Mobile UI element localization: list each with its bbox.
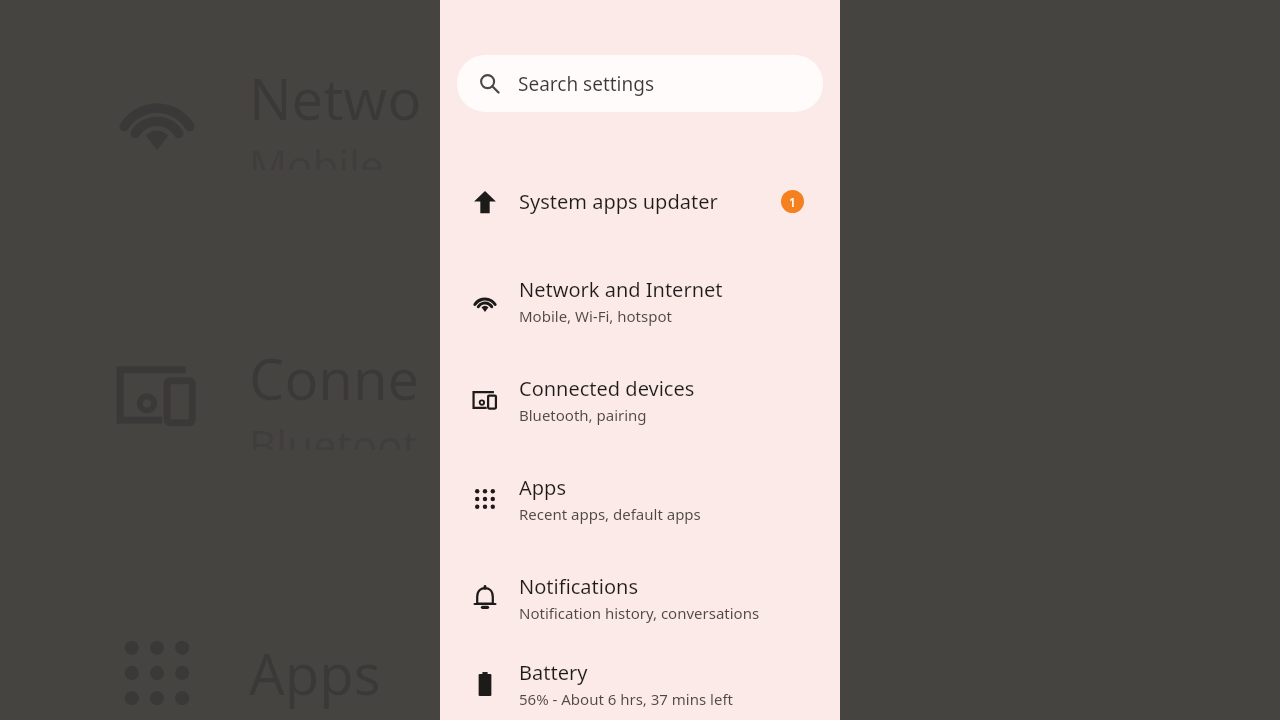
staticText: Connected devices: [519, 375, 695, 402]
staticText: System apps updater: [519, 188, 718, 215]
button[interactable]: Apps: [440, 449, 840, 548]
staticText: Connected devices: [649, 340, 840, 416]
staticText: Notification history, conversations: [519, 603, 760, 623]
staticText: 1: [789, 194, 796, 210]
staticText: Battery: [519, 659, 588, 686]
staticText: Recent apps, default apps: [519, 504, 701, 524]
staticText: 56% - About 6 hrs, 37 mins left: [519, 689, 733, 709]
staticText: Mobile, Wi-Fi, hotspot: [519, 306, 672, 326]
button[interactable]: Connected devices: [440, 350, 840, 449]
staticText: Network and Internet: [249, 60, 440, 136]
button[interactable]: Search settings: [457, 55, 823, 112]
staticText: Notifications: [519, 573, 638, 600]
staticText: Network and Internet: [519, 276, 723, 303]
staticText: Network and Internet: [649, 60, 840, 136]
button[interactable]: Battery: [440, 647, 840, 720]
staticText: Apps: [249, 635, 381, 711]
button[interactable]: System apps updater: [440, 152, 840, 251]
staticText: Apps: [649, 635, 781, 711]
staticText: Search settings: [518, 71, 655, 97]
button[interactable]: Notifications: [440, 548, 840, 647]
staticText: Apps: [519, 474, 566, 501]
staticText: Connected devices: [249, 340, 440, 416]
staticText: Bluetooth, pairing: [519, 405, 647, 425]
button[interactable]: Network and Internet: [440, 251, 840, 350]
